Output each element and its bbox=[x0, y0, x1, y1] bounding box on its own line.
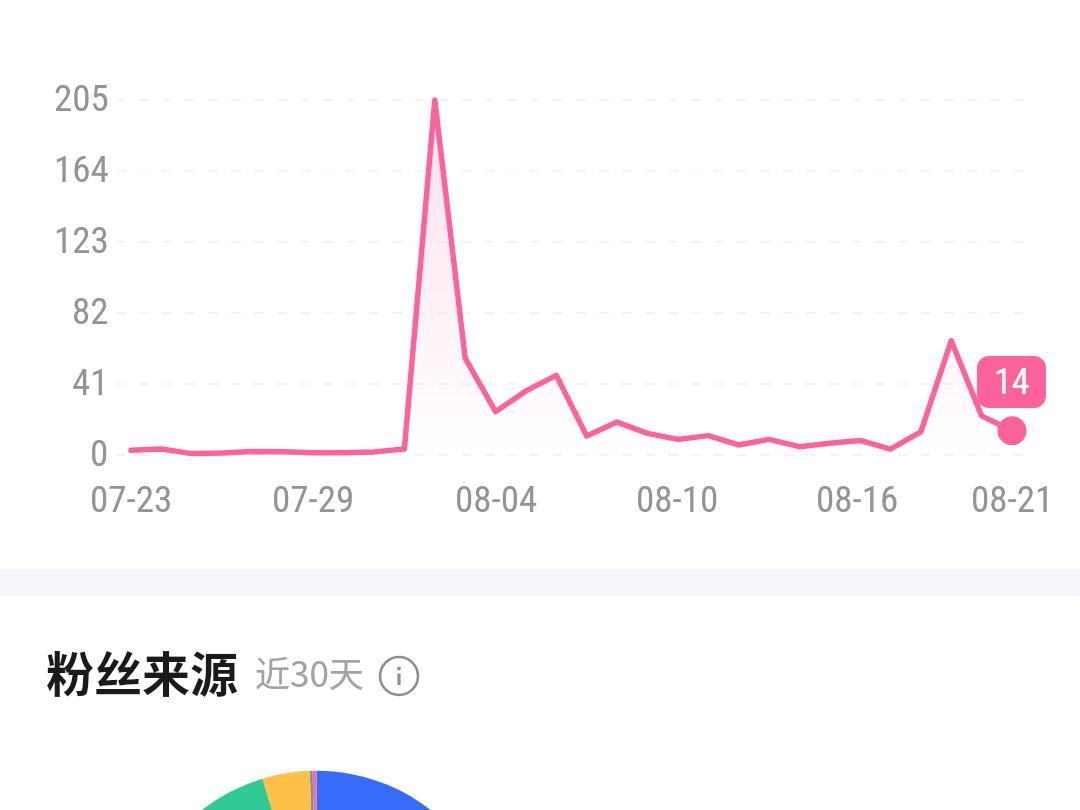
staticText: 08-04 bbox=[455, 478, 538, 521]
staticText: 82 bbox=[72, 290, 109, 333]
button[interactable]: 14 bbox=[977, 356, 1046, 408]
staticText: 07-29 bbox=[272, 478, 355, 521]
button[interactable]: Fan source pie chart bbox=[0, 700, 1080, 810]
staticText: 近30天 bbox=[255, 646, 364, 697]
staticText: 08-16 bbox=[816, 478, 899, 521]
staticText: 123 bbox=[54, 219, 109, 262]
button[interactable]: Follower trend chart bbox=[0, 0, 1080, 569]
button[interactable]: 粉丝来源 bbox=[46, 636, 420, 706]
staticText: 164 bbox=[54, 148, 109, 191]
button[interactable]: About fan sources bbox=[378, 655, 420, 697]
staticText: 08-10 bbox=[636, 478, 719, 521]
staticText: 08-21 bbox=[971, 478, 1054, 521]
staticText: 41 bbox=[72, 361, 109, 404]
staticText: 0 bbox=[90, 432, 109, 475]
staticText: 205 bbox=[54, 77, 109, 120]
staticText: 14 bbox=[994, 361, 1030, 403]
staticText: 07-23 bbox=[90, 478, 173, 521]
staticText: 粉丝来源 bbox=[46, 636, 239, 706]
